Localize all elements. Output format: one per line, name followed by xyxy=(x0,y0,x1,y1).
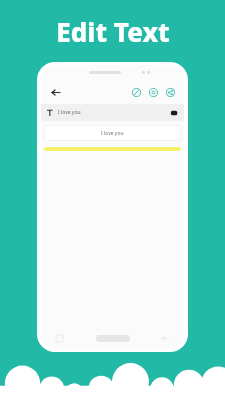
staticText: I love you xyxy=(58,109,81,116)
button[interactable]: Undo xyxy=(147,86,160,99)
staticText: Edit Text xyxy=(56,14,170,49)
button[interactable]: Back xyxy=(161,334,170,343)
button[interactable]: Backspace xyxy=(170,109,178,117)
button[interactable]: I love you xyxy=(41,104,184,121)
button[interactable]: Back xyxy=(48,85,62,99)
button[interactable]: Share xyxy=(164,86,177,99)
button[interactable]: Clear xyxy=(130,86,143,99)
button[interactable]: Recents xyxy=(55,334,64,343)
button[interactable]: I love you xyxy=(44,125,181,141)
staticText: I love you xyxy=(101,130,124,137)
